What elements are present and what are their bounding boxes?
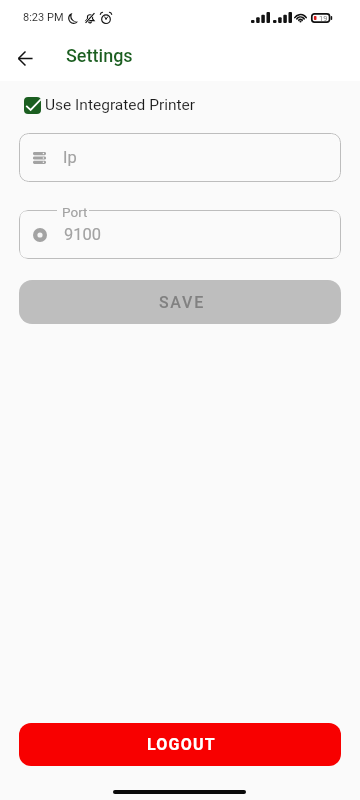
staticText: Settings	[66, 45, 133, 66]
staticText: 19	[319, 14, 328, 23]
button[interactable]: Ip	[19, 133, 341, 182]
staticText: 9100	[64, 225, 102, 244]
button[interactable]: LOGOUT	[19, 723, 341, 766]
staticText: LOGOUT	[147, 735, 216, 754]
button[interactable]: Back	[5, 38, 45, 78]
staticText: Use Integrated Printer	[45, 96, 196, 114]
button[interactable]: SAVE	[19, 280, 341, 324]
button[interactable]: 9100	[19, 210, 341, 259]
staticText: SAVE	[159, 293, 205, 312]
staticText: 8:23 PM	[23, 11, 64, 24]
staticText: Port	[62, 204, 88, 220]
staticText: Ip	[63, 148, 77, 167]
button[interactable]: Use Integrated Printer	[24, 96, 360, 114]
